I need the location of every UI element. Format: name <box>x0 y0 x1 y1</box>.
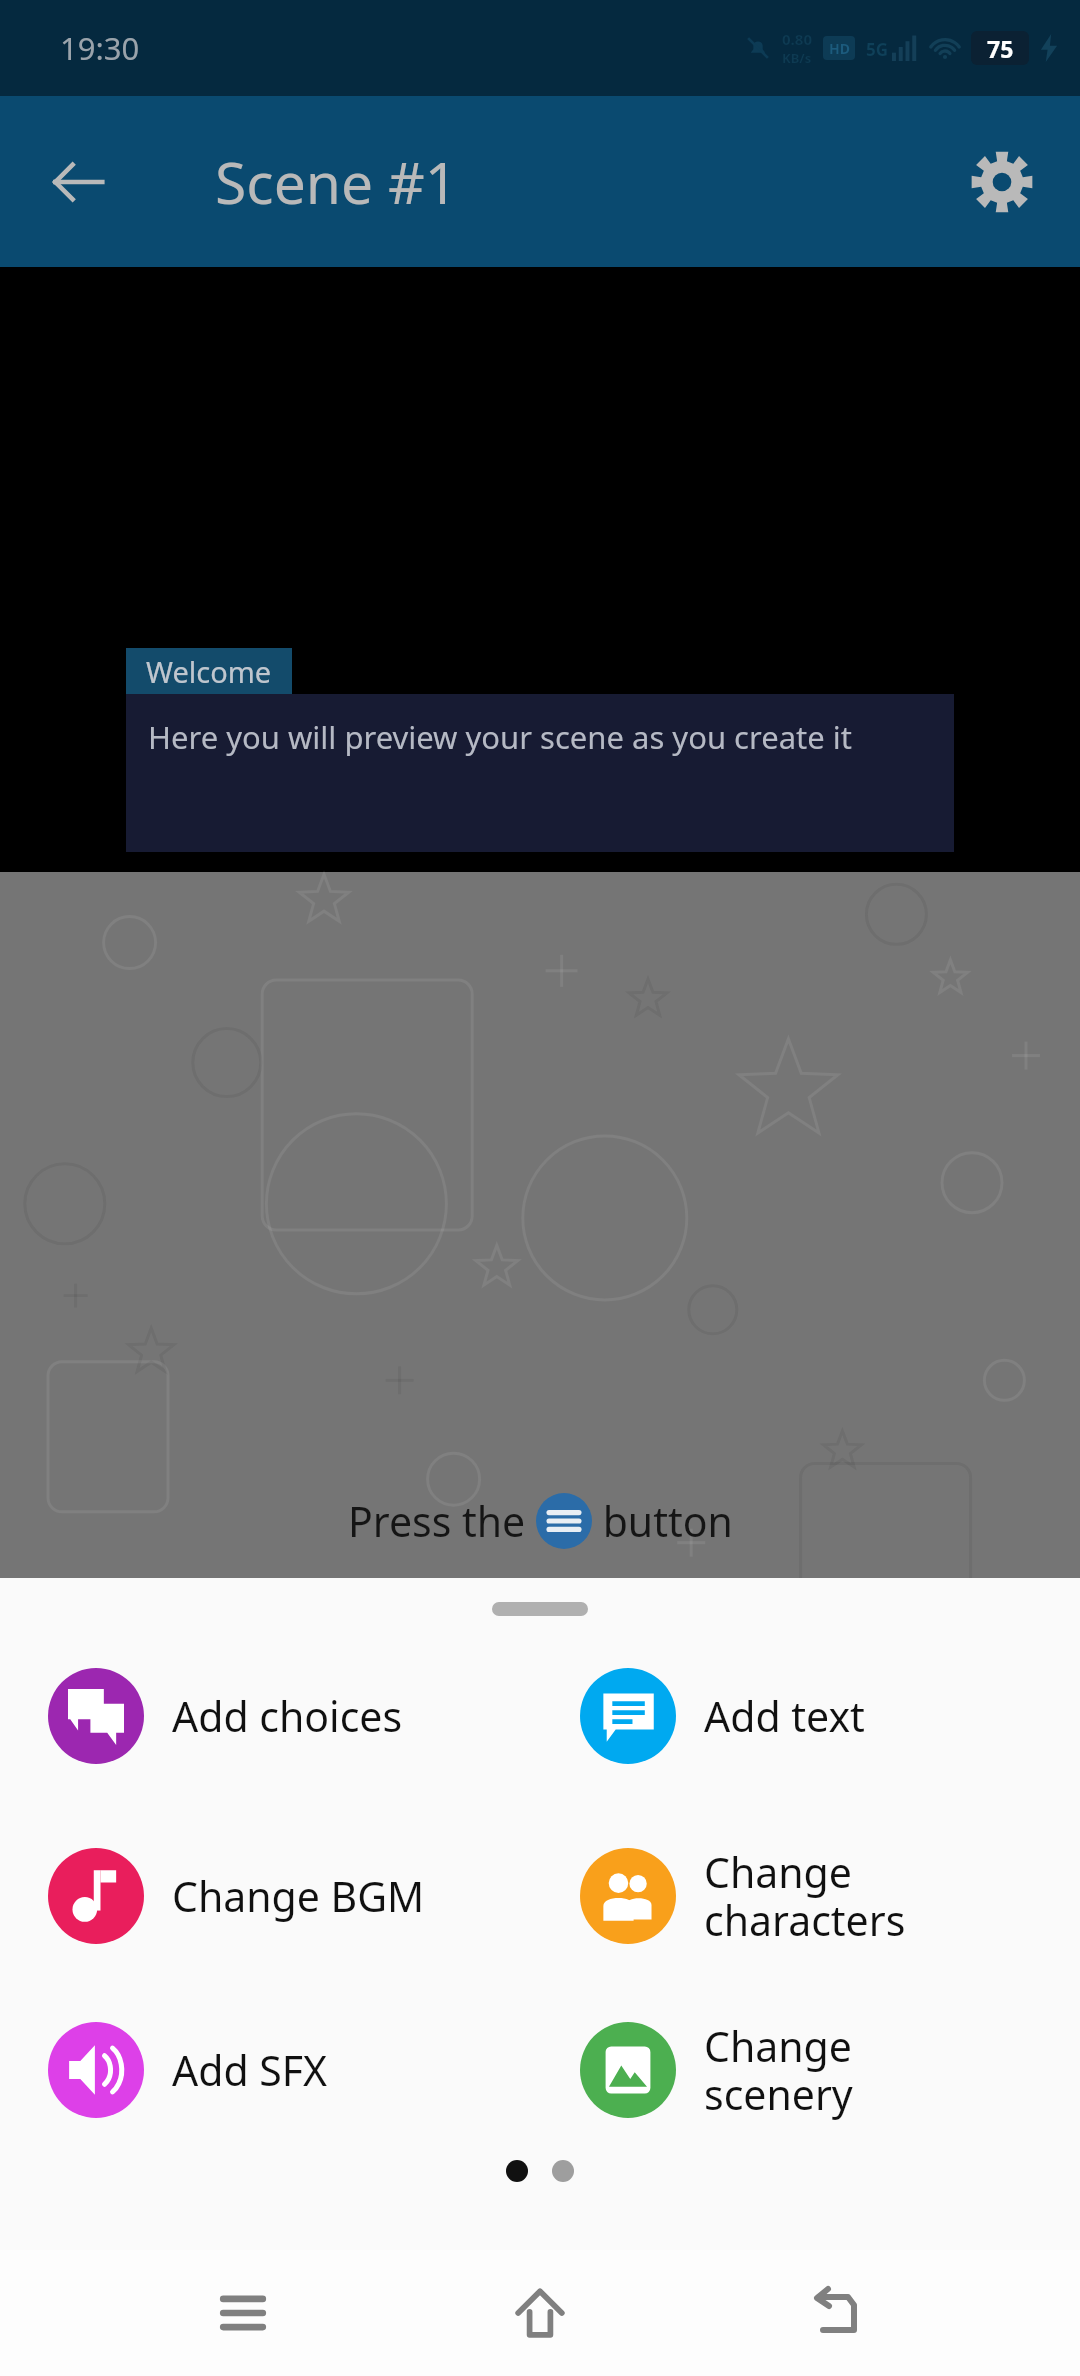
staticText: Add SFX <box>172 2042 328 2098</box>
button[interactable]: Change characters <box>540 1826 1080 1966</box>
staticText: 0.80 <box>782 29 812 49</box>
staticText: Add text <box>704 1688 865 1744</box>
staticText: Add choices <box>172 1688 403 1744</box>
button[interactable]: Add text <box>540 1646 1080 1786</box>
staticText: Welcome <box>146 652 272 691</box>
staticText: 75 <box>987 33 1014 64</box>
button[interactable]: Change scenery <box>540 2000 1080 2140</box>
staticText: Here you will preview your scene as you … <box>148 716 852 758</box>
button[interactable]: Recent apps <box>188 2258 298 2368</box>
staticText: 5G <box>866 38 889 61</box>
button[interactable]: Back <box>30 134 126 230</box>
staticText: Change scenery <box>704 2018 853 2122</box>
staticText: HD <box>829 39 850 58</box>
staticText: Change BGM <box>172 1868 425 1924</box>
staticText: Scene #1 <box>215 143 458 221</box>
staticText: Change characters <box>704 1844 906 1948</box>
button[interactable]: Change BGM <box>0 1826 540 1966</box>
button[interactable]: Settings <box>954 134 1050 230</box>
button[interactable]: Back <box>783 2258 893 2368</box>
button[interactable]: Add choices <box>0 1646 540 1786</box>
button[interactable]: Add SFX <box>0 2000 540 2140</box>
staticText: KB/s <box>782 49 812 67</box>
staticText: 19:30 <box>60 27 140 69</box>
button[interactable]: Home <box>485 2258 595 2368</box>
staticText: button <box>592 1493 733 1549</box>
staticText: Press the <box>348 1493 536 1549</box>
